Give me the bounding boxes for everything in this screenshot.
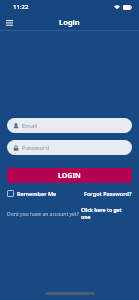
staticText: 11:22 xyxy=(13,3,29,11)
staticText: Remember Me xyxy=(17,190,57,197)
button[interactable]: LOGIN xyxy=(7,168,132,183)
button[interactable]: Forgot Password? xyxy=(84,189,132,198)
staticText: Password xyxy=(22,144,50,152)
button[interactable]: Remember Me xyxy=(7,189,57,198)
staticText: Click here to get one xyxy=(81,207,132,221)
button[interactable]: Click here to get one xyxy=(81,207,132,221)
button[interactable]: Open navigation menu xyxy=(3,16,16,29)
staticText: Login xyxy=(59,17,80,27)
staticText: LOGIN xyxy=(58,171,81,181)
staticText: Dont you have an account yet? xyxy=(7,211,81,218)
staticText: Forgot Password? xyxy=(84,190,132,197)
button[interactable]: Password xyxy=(7,140,132,155)
staticText: Email xyxy=(22,122,38,130)
button[interactable]: Email xyxy=(7,118,132,133)
